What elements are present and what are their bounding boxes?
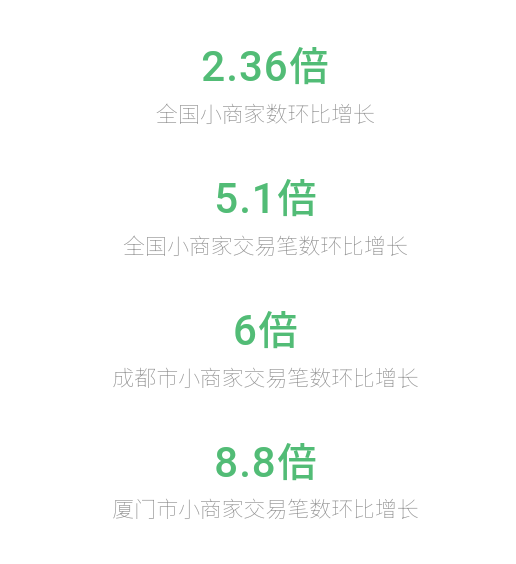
staticText: 倍	[289, 35, 329, 91]
staticText: 5.1	[214, 174, 277, 223]
staticText: 倍	[258, 299, 298, 355]
button[interactable]	[0, 22, 516, 142]
staticText: 倍	[277, 431, 317, 487]
staticText: 8.8	[214, 438, 277, 487]
button[interactable]	[0, 286, 516, 406]
staticText: 厦门市小商家交易笔数环比增长	[112, 492, 419, 524]
staticText: 6	[233, 306, 258, 355]
button[interactable]	[0, 154, 516, 274]
staticText: 全国小商家交易笔数环比增长	[123, 229, 408, 261]
staticText: 倍	[277, 167, 317, 223]
staticText: 全国小商家数环比增长	[156, 97, 375, 129]
button[interactable]	[0, 418, 516, 538]
staticText: 成都市小商家交易笔数环比增长	[112, 361, 419, 393]
staticText: 2.36	[201, 42, 289, 91]
